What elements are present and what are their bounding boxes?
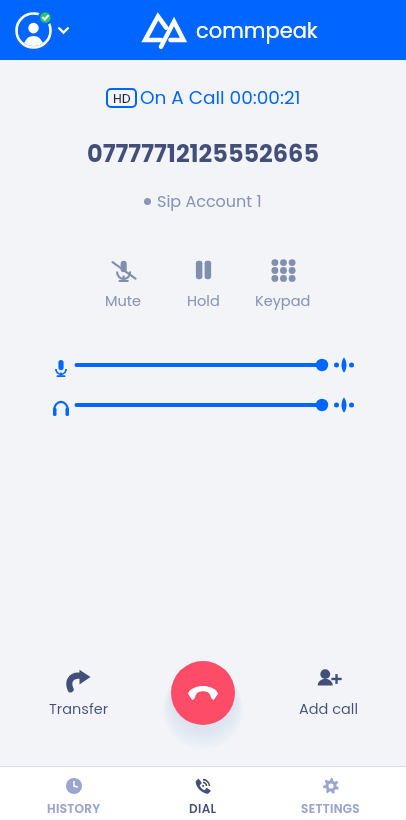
staticText: Mute — [105, 291, 142, 311]
button[interactable]: DIAL — [167, 771, 239, 820]
staticText: On A Call 00:00:21 — [140, 85, 301, 111]
button[interactable]: Account — [15, 12, 69, 49]
staticText: DIAL — [189, 800, 217, 817]
button[interactable]: Transfer — [47, 669, 111, 719]
button[interactable]: Keypad — [253, 259, 313, 311]
button[interactable]: HISTORY — [38, 771, 110, 820]
button[interactable]: Mute — [93, 259, 153, 311]
staticText: Add call — [299, 699, 358, 719]
staticText: SETTINGS — [301, 800, 361, 817]
button[interactable]: Hold — [173, 259, 233, 311]
staticText: HISTORY — [47, 800, 101, 817]
staticText: Sip Account 1 — [157, 190, 262, 212]
staticText: Keypad — [255, 291, 311, 311]
staticText: Transfer — [49, 699, 109, 719]
staticText: commpeak — [196, 16, 318, 45]
button[interactable]: Add call — [296, 669, 360, 719]
staticText: Hold — [187, 291, 220, 311]
button[interactable]: SETTINGS — [295, 771, 367, 820]
staticText: 07777712125552665 — [0, 137, 406, 171]
button[interactable]: End call — [171, 661, 235, 725]
staticText: HD — [113, 90, 131, 107]
